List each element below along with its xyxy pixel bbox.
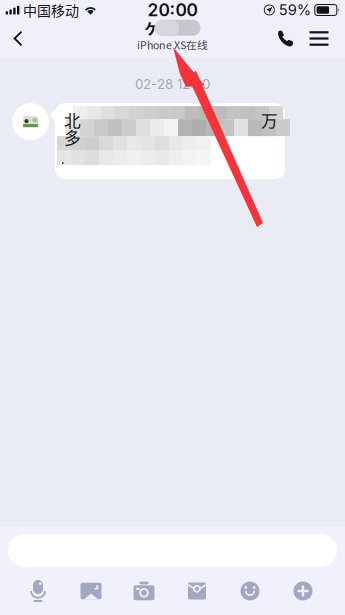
staticText: ケ	[144, 17, 159, 38]
button[interactable]: Stickers	[223, 576, 276, 606]
button[interactable]: Voice message	[11, 576, 64, 606]
button[interactable]: Camera	[117, 576, 170, 606]
staticText: 20:00	[147, 0, 197, 20]
button[interactable]: Chat settings	[302, 20, 336, 57]
staticText: 北	[64, 108, 81, 132]
button[interactable]: More	[276, 576, 329, 606]
staticText: 59%	[279, 1, 311, 19]
staticText: 02-28 12:00	[135, 76, 210, 92]
button[interactable]: Back	[0, 20, 36, 57]
button[interactable]: Message input field	[0, 527, 345, 567]
button[interactable]: Photos	[64, 576, 117, 606]
staticText: 中国移动	[23, 0, 79, 20]
button[interactable]: Red packet	[170, 576, 223, 606]
button[interactable]: Voice call	[268, 20, 302, 57]
staticText: 万	[261, 108, 278, 132]
staticText: iPhone XS在线	[137, 37, 208, 52]
staticText: 多	[64, 125, 81, 149]
